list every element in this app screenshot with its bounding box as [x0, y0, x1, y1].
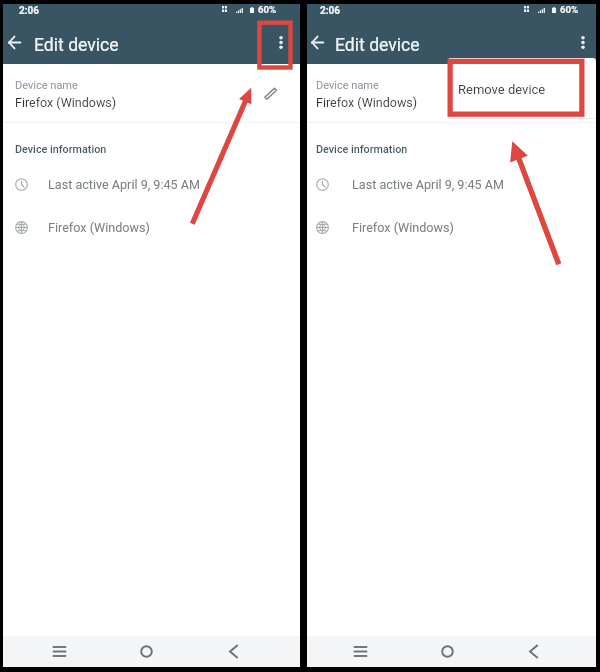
button[interactable]: Edit device name: [258, 79, 283, 104]
staticText: Firefox (Windows): [352, 220, 454, 235]
button[interactable]: More options: [267, 29, 294, 56]
staticText: 2:06: [320, 5, 341, 17]
button[interactable]: Navigate up: [1, 29, 28, 56]
button[interactable]: Back: [518, 636, 549, 667]
staticText: Firefox (Windows): [316, 95, 418, 110]
staticText: 2:06: [19, 5, 40, 17]
staticText: Device information: [15, 143, 107, 156]
button[interactable]: Last active April 9, 9:45 AM: [3, 171, 300, 197]
button[interactable]: More options: [569, 29, 596, 56]
button[interactable]: Firefox (Windows): [3, 214, 300, 240]
button[interactable]: Back: [218, 636, 249, 667]
staticText: Last active April 9, 9:45 AM: [352, 177, 504, 192]
button[interactable]: Firefox (Windows): [307, 214, 596, 240]
staticText: Device name: [316, 79, 379, 92]
staticText: Remove device: [458, 82, 546, 97]
staticText: Device name: [15, 79, 78, 92]
staticText: Edit device: [34, 35, 119, 56]
staticText: 60%: [258, 4, 277, 15]
button[interactable]: Recent apps: [44, 636, 75, 667]
button[interactable]: Recent apps: [345, 636, 376, 667]
staticText: Edit device: [335, 35, 420, 56]
button[interactable]: Last active April 9, 9:45 AM: [307, 171, 596, 197]
staticText: Last active April 9, 9:45 AM: [48, 177, 200, 192]
staticText: Device information: [316, 143, 408, 156]
staticText: Firefox (Windows): [15, 95, 117, 110]
button[interactable]: Navigate up: [304, 29, 331, 56]
button[interactable]: Home: [131, 636, 162, 667]
staticText: Firefox (Windows): [48, 220, 150, 235]
staticText: 60%: [560, 4, 579, 15]
button[interactable]: Remove device: [449, 58, 596, 118]
button[interactable]: Home: [432, 636, 463, 667]
